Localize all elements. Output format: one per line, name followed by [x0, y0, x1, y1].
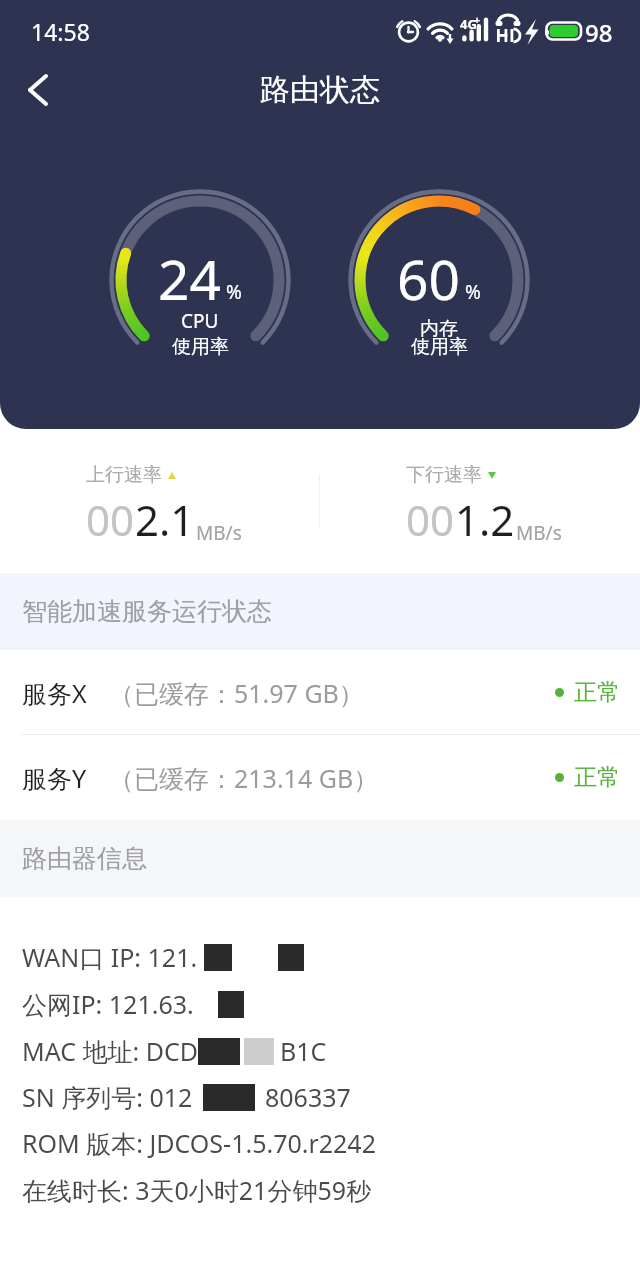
staticText: 服务Y — [22, 761, 87, 795]
staticText: WAN口 IP: 121. — [22, 940, 198, 974]
staticText: MB/s — [196, 520, 242, 546]
staticText: 公网IP: 121.63. — [22, 987, 194, 1021]
button[interactable]: Back — [4, 58, 68, 122]
staticText: 806337 — [265, 1080, 351, 1114]
staticText: 正常 — [574, 763, 620, 792]
staticText: 14:58 — [31, 16, 90, 47]
staticText: 路由器信息 — [22, 843, 147, 874]
staticText: 使用率 — [172, 335, 229, 359]
staticText: 上行速率 — [86, 463, 162, 487]
staticText: 24 — [158, 241, 221, 316]
staticText: 98 — [585, 16, 613, 49]
staticText: 4G — [460, 15, 477, 33]
staticText: B1C — [280, 1034, 327, 1068]
staticText: （已缓存：213.14 GB） — [109, 761, 379, 795]
button[interactable]: 服务X — [0, 650, 640, 735]
staticText: 使用率 — [411, 335, 468, 359]
button[interactable]: 上行速率 — [0, 429, 319, 573]
button[interactable]: 服务Y — [0, 735, 640, 820]
staticText: 在线时长: 3天0小时21分钟59秒 — [22, 1173, 372, 1207]
button[interactable]: 下行速率 — [320, 429, 640, 573]
staticText: 下行速率 — [406, 463, 482, 487]
staticText: MAC 地址: DCD — [22, 1034, 198, 1068]
staticText: CPU — [181, 308, 219, 334]
staticText: ROM 版本: JDCOS-1.5.70.r2242 — [22, 1126, 376, 1160]
staticText: SN 序列号: 012 — [22, 1080, 193, 1114]
staticText: 内存 — [420, 317, 458, 341]
staticText: 智能加速服务运行状态 — [22, 596, 272, 627]
staticText: 1.2 — [455, 491, 515, 548]
staticText: 00 — [86, 491, 135, 548]
staticText: MB/s — [516, 520, 562, 546]
staticText: 正常 — [574, 678, 620, 707]
staticText: 60 — [397, 241, 460, 316]
staticText: % — [226, 279, 242, 305]
staticText: 2.1 — [135, 491, 195, 548]
staticText: % — [465, 279, 481, 305]
staticText: 路由状态 — [260, 71, 380, 109]
staticText: 00 — [406, 491, 455, 548]
button[interactable]: CPU usage 24 percent — [110, 190, 290, 370]
staticText: 服务X — [22, 676, 87, 710]
button[interactable]: Memory usage 60 percent — [349, 190, 529, 370]
staticText: （已缓存：51.97 GB） — [109, 676, 364, 710]
staticText: + — [474, 12, 481, 27]
